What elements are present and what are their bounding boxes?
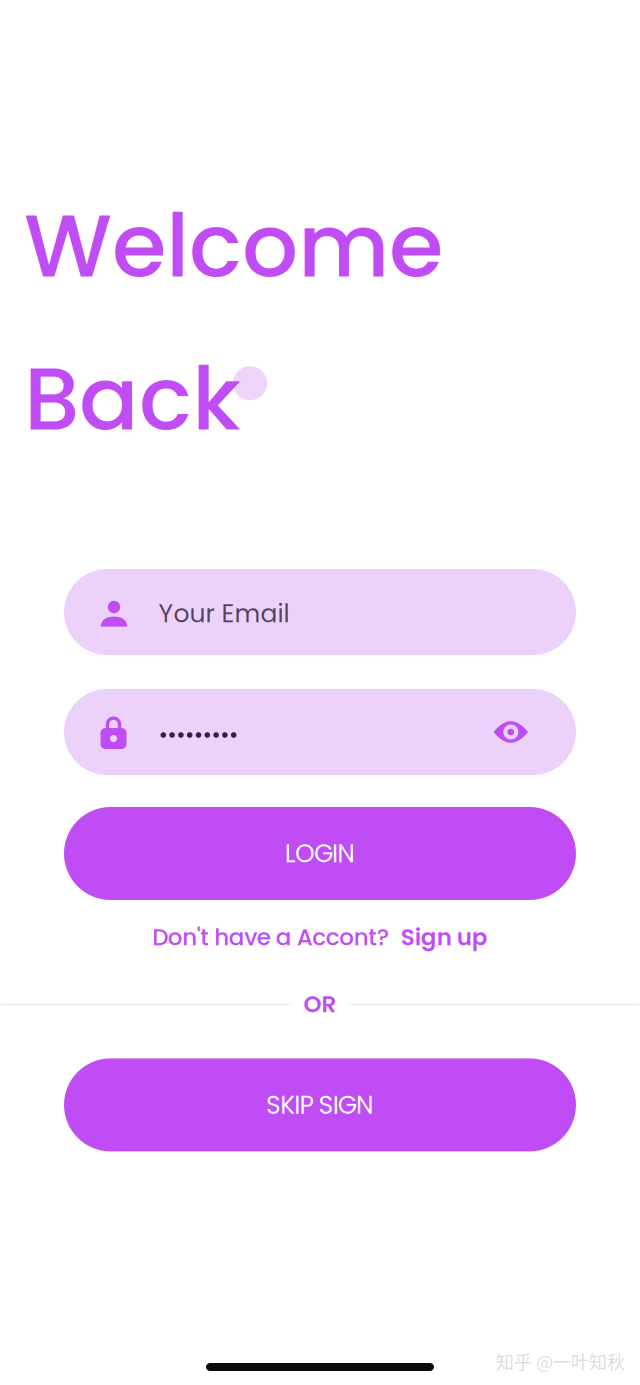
- staticText: Don't have a Accont?: [152, 921, 389, 953]
- staticText: OR: [303, 988, 336, 1020]
- button[interactable]: [64, 689, 576, 775]
- staticText: Back: [24, 337, 241, 460]
- staticText: SKIP SIGN: [266, 1087, 374, 1122]
- staticText: Welcome: [24, 184, 443, 307]
- staticText: 知乎 @一叶知秋: [496, 1348, 625, 1374]
- button[interactable]: Your Email: [64, 569, 576, 655]
- staticText: LOGIN: [285, 836, 355, 871]
- button[interactable]: LOGIN: [64, 807, 576, 900]
- staticText: Sign up: [401, 921, 488, 953]
- button[interactable]: Sign up: [389, 921, 488, 953]
- staticText: Your Email: [158, 596, 289, 631]
- button[interactable]: SKIP SIGN: [64, 1058, 576, 1151]
